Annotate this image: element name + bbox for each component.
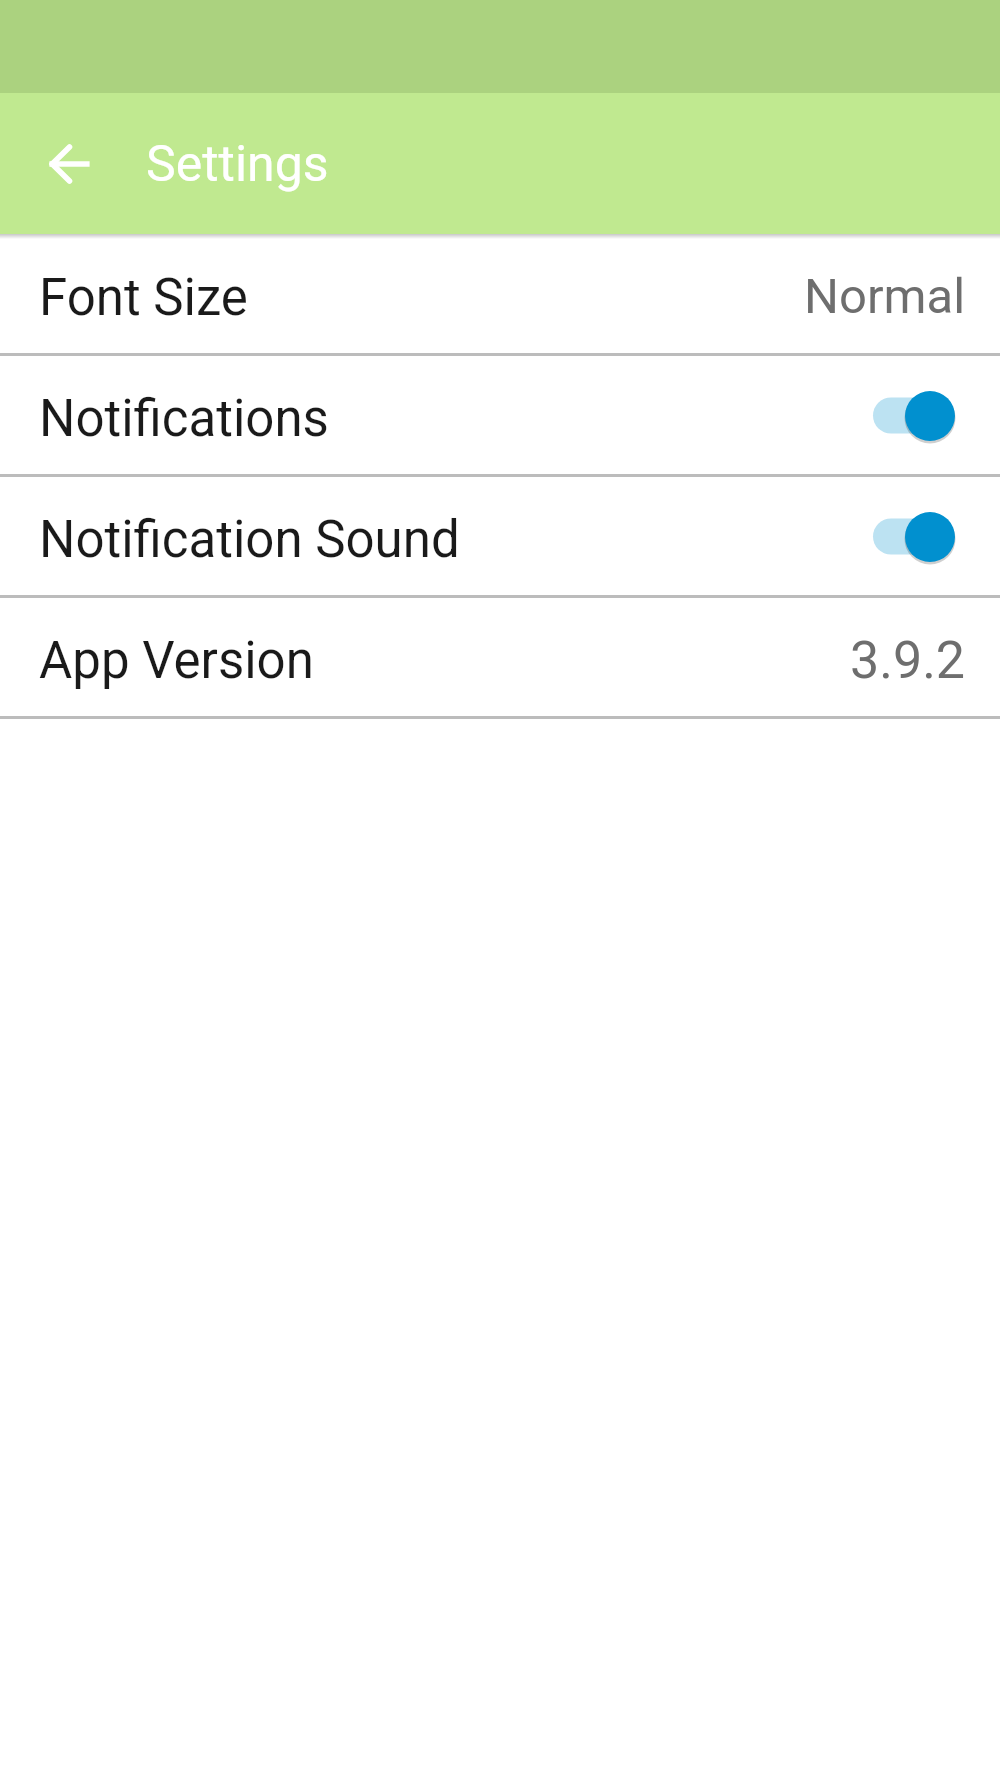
staticText: Notification Sound	[39, 510, 460, 570]
button[interactable]: Notifications	[0, 356, 1000, 474]
staticText: Normal	[804, 268, 966, 325]
staticText: Settings	[146, 135, 329, 194]
button[interactable]: Back	[24, 119, 114, 209]
button[interactable]: Notifications toggle	[873, 385, 966, 445]
button[interactable]: Font Size	[0, 234, 1000, 353]
button[interactable]: App Version	[0, 598, 1000, 716]
staticText: Font Size	[39, 268, 248, 328]
staticText: App Version	[39, 631, 314, 691]
staticText: 3.9.2	[850, 630, 966, 691]
staticText: Notifications	[39, 389, 329, 449]
button[interactable]: Notification Sound	[0, 477, 1000, 595]
button[interactable]: Notification Sound toggle	[873, 506, 966, 566]
